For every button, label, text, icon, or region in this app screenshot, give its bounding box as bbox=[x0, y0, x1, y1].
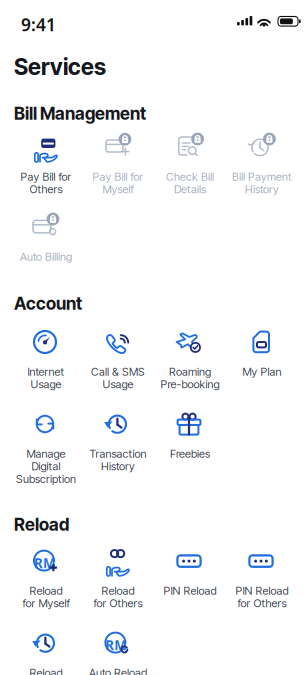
staticText: Reload bbox=[29, 666, 62, 675]
button[interactable]: Pay Bill for bbox=[10, 133, 82, 211]
button[interactable]: Reload bbox=[82, 547, 154, 625]
staticText: Bill Management bbox=[14, 103, 146, 124]
staticText: Auto Billing bbox=[20, 250, 72, 263]
staticText: Pre-booking bbox=[160, 378, 219, 391]
staticText: History bbox=[245, 183, 279, 196]
staticText: Account bbox=[14, 293, 82, 314]
staticText: 9:41 bbox=[21, 13, 56, 36]
staticText: Myself bbox=[102, 183, 133, 196]
button[interactable]: RM bbox=[82, 629, 154, 675]
staticText: Internet bbox=[27, 365, 64, 378]
staticText: Reload bbox=[29, 584, 62, 597]
button[interactable]: Pay Bill for bbox=[82, 133, 154, 211]
staticText: Digital bbox=[31, 460, 60, 473]
button[interactable]: Call & SMS bbox=[82, 328, 154, 406]
staticText: My Plan bbox=[242, 365, 281, 378]
button[interactable]: Internet bbox=[10, 328, 82, 406]
staticText: Bill Payment bbox=[232, 170, 292, 183]
staticText: Freebies bbox=[170, 447, 210, 460]
button[interactable]: Manage bbox=[10, 410, 82, 488]
staticText: Usage bbox=[30, 378, 61, 391]
button[interactable]: PIN Reload bbox=[226, 547, 298, 625]
staticText: Pay Bill for bbox=[92, 170, 143, 183]
staticText: Manage bbox=[26, 447, 65, 460]
staticText: PIN Reload bbox=[163, 584, 216, 597]
button[interactable]: Roaming bbox=[154, 328, 226, 406]
staticText: for Others bbox=[237, 597, 286, 610]
staticText: Auto Reload bbox=[89, 666, 147, 675]
staticText: PIN Reload bbox=[235, 584, 288, 597]
staticText: Check Bill bbox=[166, 170, 214, 183]
staticText: Subscription bbox=[16, 472, 76, 486]
button[interactable]: PIN Reload bbox=[154, 547, 226, 625]
button[interactable]: Check Bill bbox=[154, 133, 226, 211]
staticText: Reload bbox=[101, 584, 134, 597]
staticText: for Others bbox=[93, 597, 142, 610]
staticText: Pay Bill for bbox=[20, 170, 71, 183]
staticText: Details bbox=[174, 183, 206, 196]
staticText: Reload bbox=[14, 514, 69, 535]
button[interactable]: My Plan bbox=[226, 328, 298, 406]
staticText: RM bbox=[105, 636, 127, 654]
staticText: Call & SMS bbox=[91, 365, 145, 378]
staticText: Roaming bbox=[169, 365, 211, 378]
staticText: Usage bbox=[102, 378, 133, 391]
staticText: History bbox=[101, 460, 135, 473]
button[interactable]: Auto Billing bbox=[10, 213, 82, 291]
button[interactable]: Reload bbox=[10, 629, 82, 675]
button[interactable]: RM bbox=[10, 547, 82, 625]
staticText: Services bbox=[14, 53, 106, 80]
staticText: Transaction bbox=[89, 447, 146, 460]
staticText: RM bbox=[34, 554, 56, 572]
button[interactable]: Bill Payment bbox=[226, 133, 298, 211]
staticText: Others bbox=[29, 183, 62, 196]
staticText: for Myself bbox=[22, 597, 69, 610]
button[interactable]: Freebies bbox=[154, 410, 226, 488]
button[interactable]: Transaction bbox=[82, 410, 154, 488]
